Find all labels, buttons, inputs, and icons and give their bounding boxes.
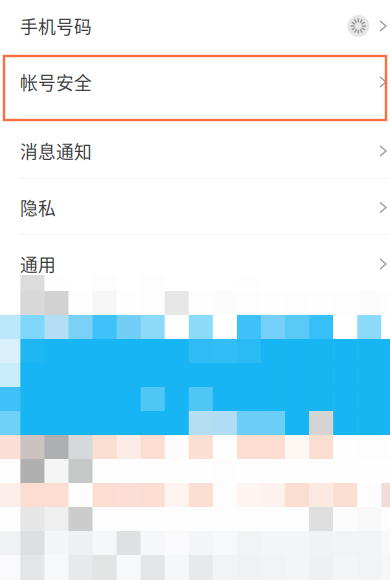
staticText: 通用 — [20, 251, 56, 277]
button[interactable]: 手机号码 — [0, 0, 390, 52]
button[interactable]: 通用 — [0, 235, 390, 293]
button[interactable]: 消息通知 — [0, 120, 390, 182]
button[interactable]: 帐号安全 — [0, 53, 390, 111]
staticText: 手机号码 — [20, 13, 92, 39]
button[interactable]: 隐私 — [0, 179, 390, 236]
staticText: 隐私 — [20, 195, 56, 220]
staticText: 消息通知 — [20, 138, 92, 164]
staticText: 帐号安全 — [20, 69, 92, 95]
